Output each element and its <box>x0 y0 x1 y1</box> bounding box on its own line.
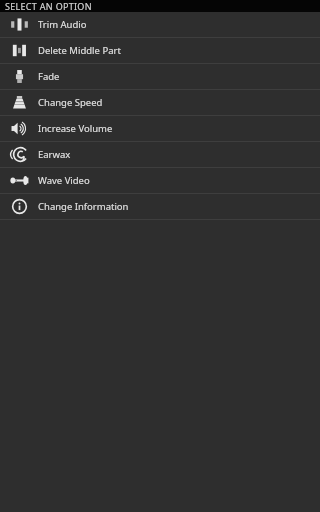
staticText: Fade <box>38 70 60 83</box>
staticText: Delete Middle Part <box>38 44 121 57</box>
button[interactable]: Fade <box>0 64 320 89</box>
staticText: Change Speed <box>38 96 103 109</box>
button[interactable]: Trim Audio <box>0 12 320 37</box>
button[interactable]: Change Speed <box>0 90 320 115</box>
button[interactable]: Change Information <box>0 194 320 219</box>
staticText: SELECT AN OPTION <box>5 0 92 11</box>
staticText: Change Information <box>38 200 129 213</box>
staticText: Wave Video <box>38 174 90 187</box>
button[interactable]: Increase Volume <box>0 116 320 141</box>
button[interactable]: Delete Middle Part <box>0 38 320 63</box>
staticText: Increase Volume <box>38 122 113 135</box>
staticText: Earwax <box>38 148 71 161</box>
button[interactable]: Wave Video <box>0 168 320 193</box>
staticText: Trim Audio <box>38 18 87 31</box>
button[interactable]: Earwax <box>0 142 320 167</box>
